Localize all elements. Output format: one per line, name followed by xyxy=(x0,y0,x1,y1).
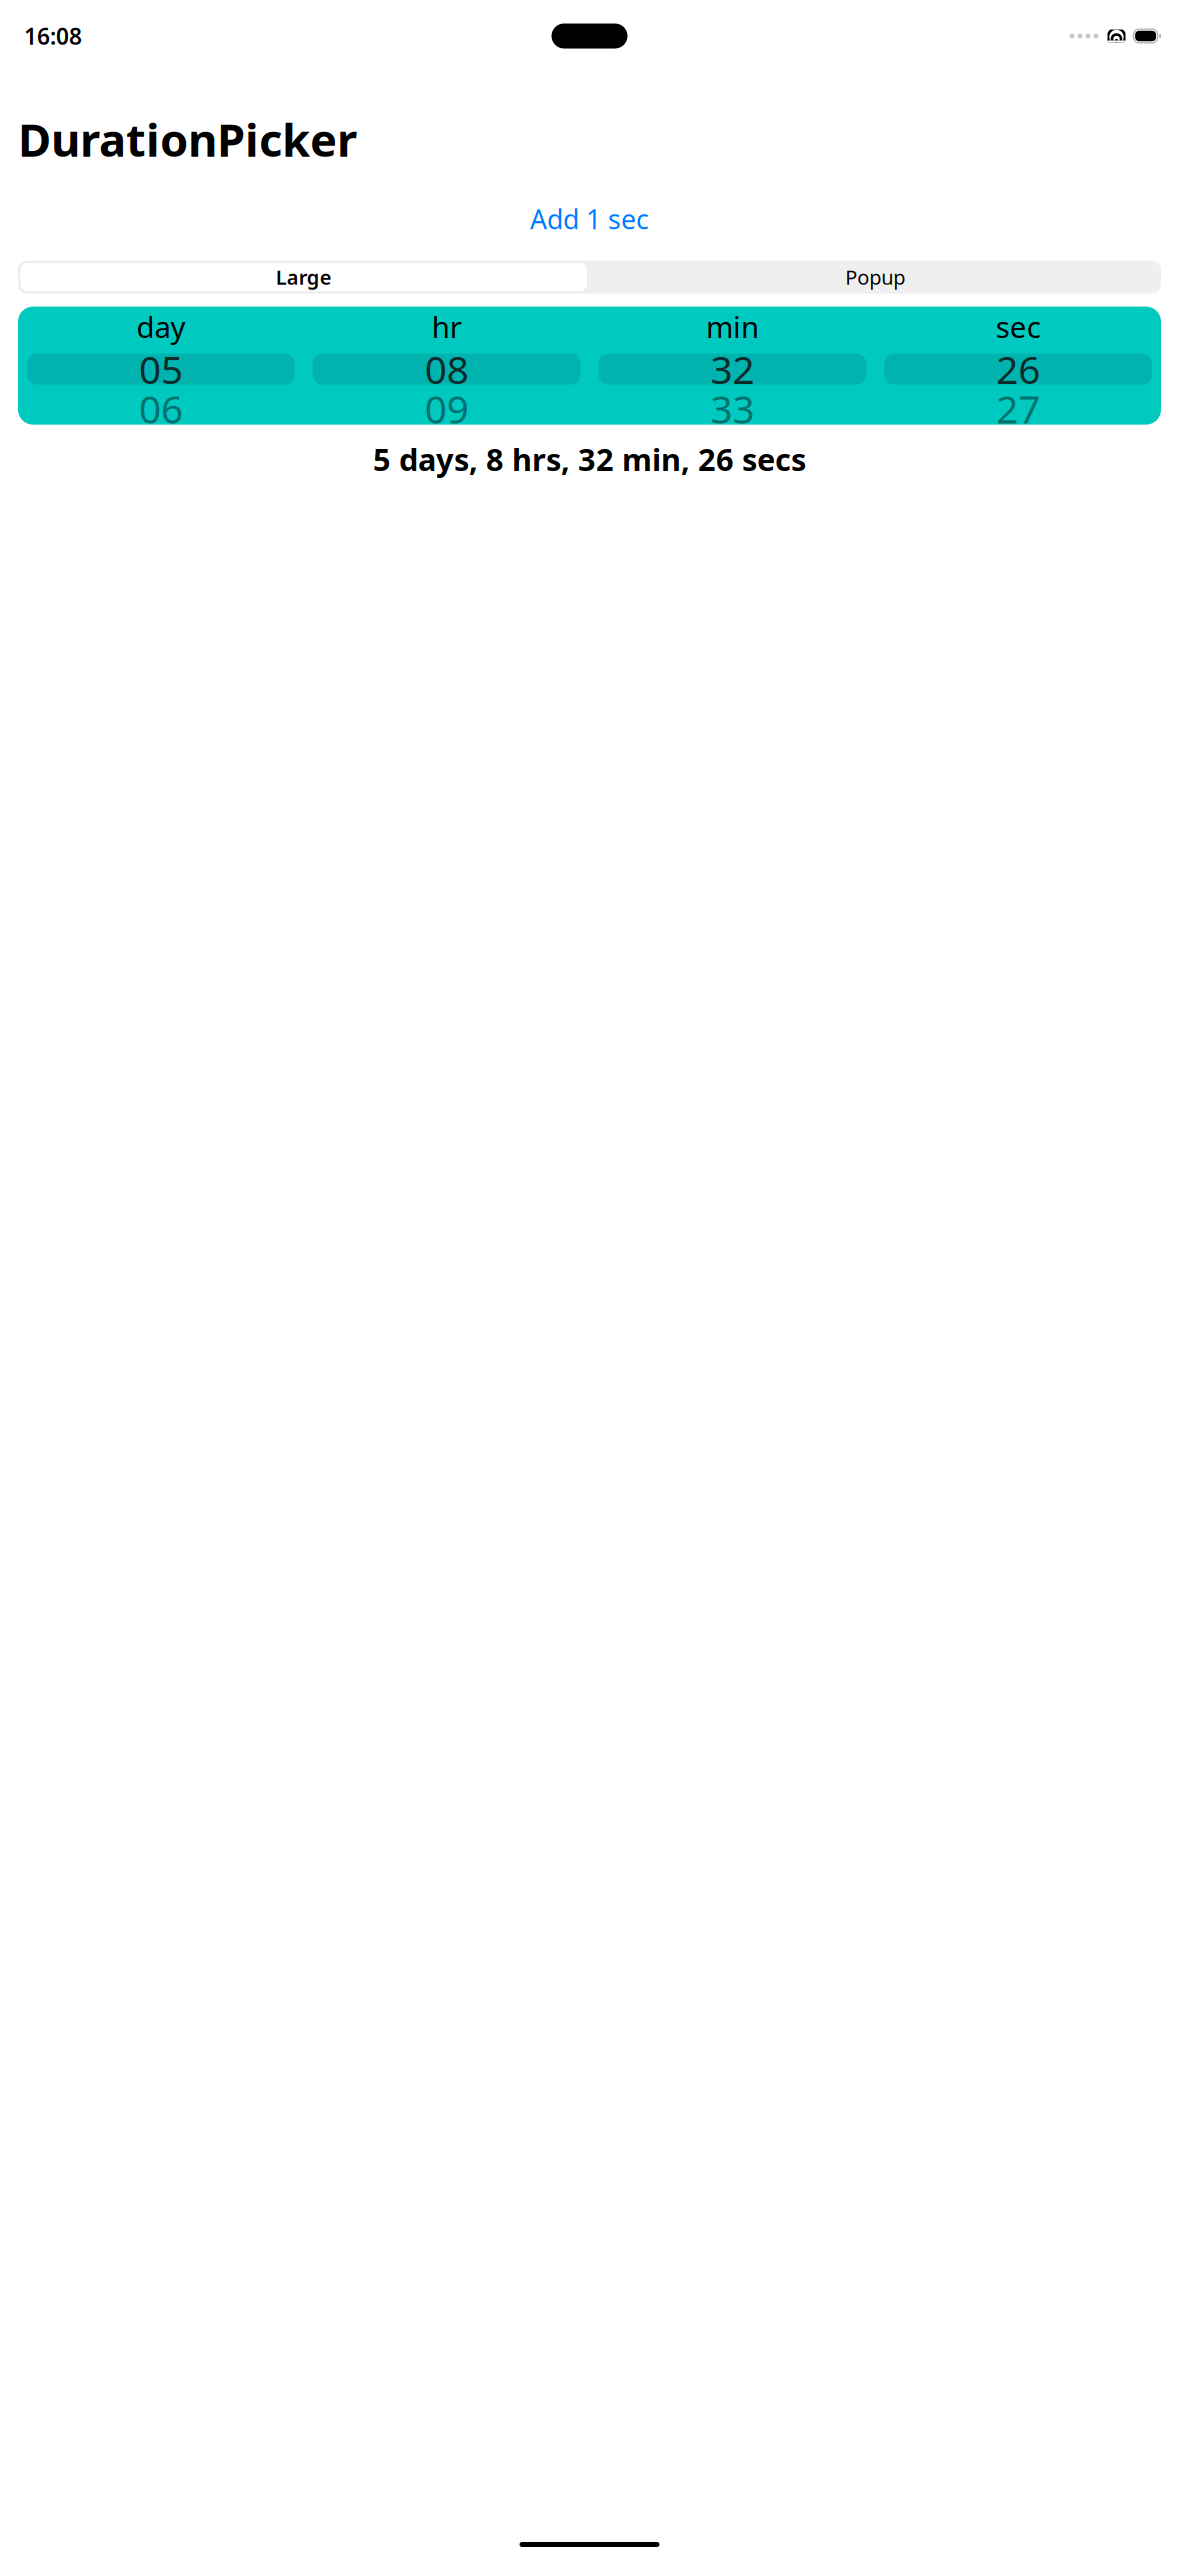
staticText: 06 xyxy=(139,383,183,434)
staticText: 26 xyxy=(996,343,1040,395)
staticText: min xyxy=(706,307,759,346)
staticText: 32 xyxy=(710,343,754,395)
staticText: Add 1 sec xyxy=(530,201,649,237)
staticText: 33 xyxy=(710,383,754,434)
staticText: Large xyxy=(276,264,332,290)
button[interactable]: 08 xyxy=(304,354,590,385)
staticText: hr xyxy=(432,307,462,346)
staticText: DurationPicker xyxy=(18,109,357,169)
staticText: day xyxy=(136,307,185,346)
staticText: sec xyxy=(996,307,1041,346)
staticText: 16:08 xyxy=(24,21,82,51)
button[interactable]: 32 xyxy=(589,354,875,385)
staticText: 08 xyxy=(425,343,469,395)
button[interactable]: Large xyxy=(18,261,589,294)
staticText: Popup xyxy=(845,264,905,290)
button[interactable]: 05 xyxy=(18,354,304,385)
staticText: 27 xyxy=(996,383,1040,434)
button[interactable]: Popup xyxy=(589,261,1161,294)
button[interactable]: 26 xyxy=(875,354,1161,385)
staticText: 5 days, 8 hrs, 32 min, 26 secs xyxy=(373,439,806,479)
button[interactable]: Add 1 sec xyxy=(516,197,663,241)
staticText: 09 xyxy=(425,383,469,434)
staticText: 05 xyxy=(139,343,183,395)
